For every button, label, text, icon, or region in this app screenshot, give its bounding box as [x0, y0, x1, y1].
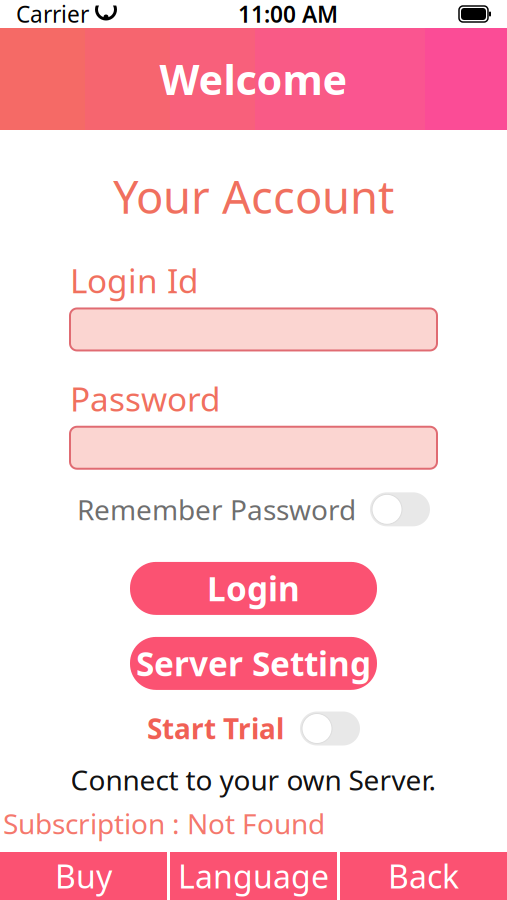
button[interactable]: Buy	[0, 852, 167, 900]
button[interactable]: Text field	[70, 308, 437, 350]
button[interactable]: Toggle	[370, 492, 430, 526]
staticText: Welcome	[159, 52, 347, 106]
button[interactable]: Back	[340, 852, 507, 900]
staticText: Back	[388, 855, 459, 897]
staticText: Remember Password	[77, 491, 356, 528]
staticText: Password	[70, 376, 221, 421]
staticText: Start Trial	[147, 710, 284, 747]
button[interactable]: Text field	[70, 427, 437, 469]
button[interactable]: Toggle	[300, 711, 360, 745]
button[interactable]: Server Setting	[130, 637, 377, 690]
staticText: Buy	[55, 855, 112, 897]
button[interactable]: Language	[170, 852, 337, 900]
staticText: Login	[207, 566, 300, 611]
staticText: Connect to your own Server.	[70, 761, 436, 798]
staticText: Language	[178, 855, 329, 897]
staticText: Carrier	[16, 0, 89, 29]
staticText: 11:00 AM	[238, 0, 338, 29]
staticText: Server Setting	[136, 641, 371, 686]
button[interactable]: Login	[130, 562, 377, 615]
staticText: Login Id	[70, 258, 199, 302]
staticText: Your Account	[113, 166, 394, 226]
staticText: Subscription : Not Found	[3, 805, 325, 842]
